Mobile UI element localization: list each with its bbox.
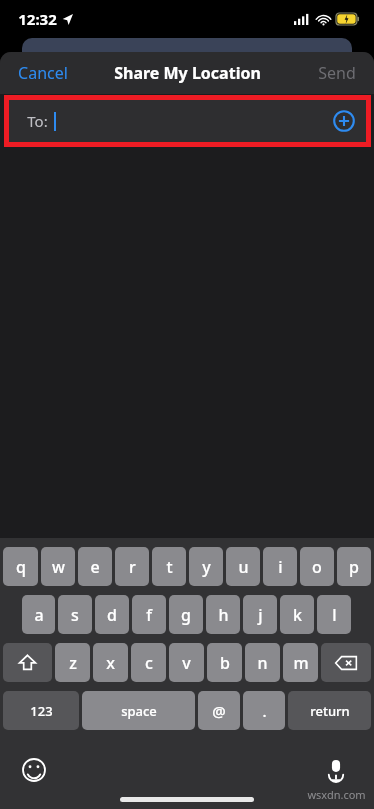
button[interactable]: space: [82, 691, 195, 730]
button[interactable]: d: [95, 595, 129, 634]
button[interactable]: Cancel: [0, 54, 86, 92]
staticText: 123: [30, 702, 53, 720]
button[interactable]: i: [263, 547, 297, 586]
staticText: @: [212, 701, 226, 721]
staticText: o: [312, 556, 322, 578]
button[interactable]: To:: [9, 100, 366, 142]
button[interactable]: o: [300, 547, 334, 586]
button[interactable]: w: [41, 547, 75, 586]
button[interactable]: l: [317, 595, 351, 634]
button[interactable]: @: [198, 691, 240, 730]
staticText: To:: [27, 111, 48, 131]
staticText: m: [293, 652, 309, 674]
button[interactable]: Backspace: [321, 643, 371, 682]
button[interactable]: Shift: [3, 643, 52, 682]
staticText: w: [52, 556, 65, 578]
staticText: q: [16, 556, 26, 578]
staticText: c: [145, 652, 153, 674]
staticText: l: [332, 604, 337, 626]
button[interactable]: a: [22, 595, 55, 634]
button[interactable]: g: [169, 595, 203, 634]
button[interactable]: s: [58, 595, 92, 634]
staticText: x: [106, 652, 115, 674]
staticText: h: [218, 604, 229, 626]
button[interactable]: e: [78, 547, 112, 586]
button[interactable]: Send: [300, 54, 374, 92]
staticText: s: [71, 604, 79, 626]
staticText: 12:32: [18, 9, 57, 29]
button[interactable]: j: [243, 595, 277, 634]
button[interactable]: h: [206, 595, 240, 634]
staticText: n: [257, 652, 268, 674]
staticText: d: [107, 604, 117, 626]
staticText: p: [349, 556, 359, 578]
button[interactable]: b: [207, 643, 242, 682]
staticText: u: [238, 556, 249, 578]
button[interactable]: Emoji: [22, 758, 46, 782]
button[interactable]: n: [245, 643, 280, 682]
staticText: f: [146, 604, 152, 626]
staticText: y: [202, 556, 211, 578]
staticText: a: [34, 604, 44, 626]
button[interactable]: Add contact: [333, 110, 355, 132]
button[interactable]: p: [337, 547, 371, 586]
button[interactable]: .: [243, 691, 285, 730]
staticText: Cancel: [18, 62, 68, 84]
staticText: j: [258, 604, 263, 626]
staticText: r: [129, 556, 136, 578]
staticText: return: [310, 702, 350, 720]
button[interactable]: 123: [3, 691, 79, 730]
button[interactable]: y: [189, 547, 223, 586]
button[interactable]: m: [283, 643, 318, 682]
staticText: Send: [318, 62, 356, 84]
staticText: .: [262, 701, 267, 721]
button[interactable]: f: [132, 595, 166, 634]
staticText: i: [278, 556, 283, 578]
button[interactable]: c: [131, 643, 166, 682]
staticText: z: [69, 652, 77, 674]
staticText: space: [121, 702, 157, 720]
staticText: t: [166, 556, 173, 578]
button[interactable]: x: [93, 643, 128, 682]
button[interactable]: q: [3, 547, 38, 586]
button[interactable]: t: [152, 547, 186, 586]
staticText: g: [181, 604, 191, 626]
staticText: k: [293, 604, 302, 626]
staticText: wsxdn.com: [307, 787, 366, 802]
button[interactable]: r: [115, 547, 149, 586]
staticText: v: [182, 652, 191, 674]
button[interactable]: v: [169, 643, 204, 682]
staticText: Share My Location: [114, 62, 261, 84]
staticText: e: [90, 556, 100, 578]
button[interactable]: u: [226, 547, 260, 586]
button[interactable]: k: [280, 595, 314, 634]
button[interactable]: Dictation: [324, 758, 348, 782]
button[interactable]: z: [55, 643, 90, 682]
staticText: b: [220, 652, 230, 674]
button[interactable]: return: [288, 691, 371, 730]
